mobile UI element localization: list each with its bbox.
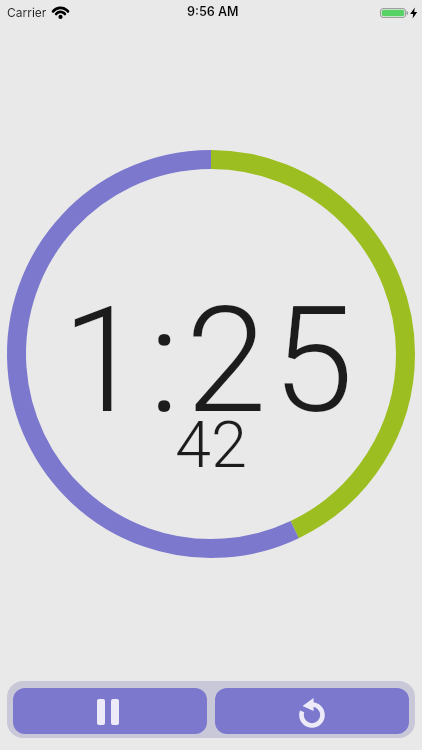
staticText: 42 (175, 407, 248, 483)
button[interactable] (13, 688, 207, 734)
button[interactable] (215, 688, 409, 734)
staticText: Carrier (7, 5, 47, 20)
staticText: 9:56 AM (187, 4, 239, 19)
staticText: 1:25 (62, 276, 360, 447)
